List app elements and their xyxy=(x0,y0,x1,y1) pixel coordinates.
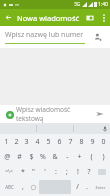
staticText: ) xyxy=(102,152,105,162)
staticText: - xyxy=(66,152,69,162)
staticText: * xyxy=(21,167,25,177)
staticText: . xyxy=(86,182,88,192)
staticText: 9 xyxy=(90,137,95,147)
staticText: 3 xyxy=(24,137,29,147)
button[interactable]: * xyxy=(17,164,28,179)
button[interactable]: ? xyxy=(83,164,94,179)
staticText: ' xyxy=(44,167,46,177)
staticText: 4 xyxy=(35,137,40,147)
button[interactable]: 9 xyxy=(87,134,98,149)
button[interactable]: ( xyxy=(85,149,97,164)
staticText: $ xyxy=(29,152,34,162)
staticText: 7 xyxy=(68,137,73,147)
button[interactable]: 4 xyxy=(32,134,43,149)
staticText: + xyxy=(77,152,82,162)
staticText: & xyxy=(52,152,58,162)
button[interactable]: 3 xyxy=(21,134,32,149)
staticText: , xyxy=(22,182,24,192)
button[interactable]: 1 xyxy=(1,134,11,149)
button[interactable]: % xyxy=(37,149,49,164)
button[interactable]: Attach contact xyxy=(82,10,98,26)
button[interactable]: More options xyxy=(98,12,110,24)
button[interactable]: " xyxy=(28,164,39,179)
staticText: ABC xyxy=(5,184,14,190)
button[interactable]: Add recipient xyxy=(91,30,105,44)
button[interactable]: ) xyxy=(97,149,109,164)
button[interactable]: - xyxy=(61,149,73,164)
staticText: Enter xyxy=(95,185,106,190)
button[interactable]: & xyxy=(49,149,61,164)
button[interactable]: Send xyxy=(93,107,107,121)
staticText: 2 xyxy=(14,137,19,147)
button[interactable]: Voice input xyxy=(99,123,110,134)
button[interactable]: 7 xyxy=(65,134,76,149)
staticText: " xyxy=(32,167,35,177)
staticText: / xyxy=(76,182,79,192)
staticText: =\< xyxy=(5,168,13,175)
button[interactable]: Back xyxy=(0,9,17,26)
button[interactable]: / xyxy=(72,180,82,194)
staticText: ! xyxy=(77,167,79,177)
button[interactable]: ; xyxy=(61,164,72,179)
button[interactable]: $ xyxy=(25,149,37,164)
staticText: 5 xyxy=(46,137,51,147)
button[interactable]: Enter xyxy=(92,180,109,194)
button[interactable]: Add attachment xyxy=(3,108,16,121)
button[interactable]: Backspace xyxy=(94,164,109,179)
button[interactable]: : xyxy=(50,164,61,179)
staticText: 1:40 xyxy=(98,1,108,8)
button[interactable]: 0 xyxy=(98,134,109,149)
button[interactable]: # xyxy=(13,149,25,164)
staticText: ( xyxy=(90,152,93,162)
button[interactable]: 8 xyxy=(76,134,87,149)
staticText: @ xyxy=(4,152,11,162)
button[interactable]: 2 xyxy=(11,134,21,149)
staticText: # xyxy=(17,152,22,162)
button[interactable]: Emoji xyxy=(28,180,38,194)
button[interactable]: . xyxy=(82,180,92,194)
staticText: % xyxy=(40,152,46,162)
button[interactable]: 6 xyxy=(54,134,65,149)
staticText: ? xyxy=(87,167,91,177)
button[interactable]: , xyxy=(18,180,28,194)
staticText: Nowa wiadomość xyxy=(17,13,82,23)
button[interactable]: + xyxy=(73,149,85,164)
button[interactable]: ' xyxy=(39,164,50,179)
staticText: : xyxy=(55,167,57,177)
button[interactable]: ! xyxy=(72,164,83,179)
button[interactable]: @ xyxy=(1,149,13,164)
staticText: Wpisz nazwę lub numer xyxy=(5,30,84,40)
button[interactable]: 5 xyxy=(43,134,54,149)
staticText: 3G xyxy=(74,1,81,8)
button[interactable]: =\< xyxy=(1,164,17,179)
staticText: 8 xyxy=(79,137,84,147)
staticText: Wpisz wiadomość tekstową xyxy=(16,105,89,123)
staticText: 6 xyxy=(57,137,62,147)
button[interactable]: ABC xyxy=(1,180,18,194)
staticText: 1 xyxy=(4,137,9,147)
staticText: ; xyxy=(66,167,68,177)
staticText: 0 xyxy=(101,137,106,147)
